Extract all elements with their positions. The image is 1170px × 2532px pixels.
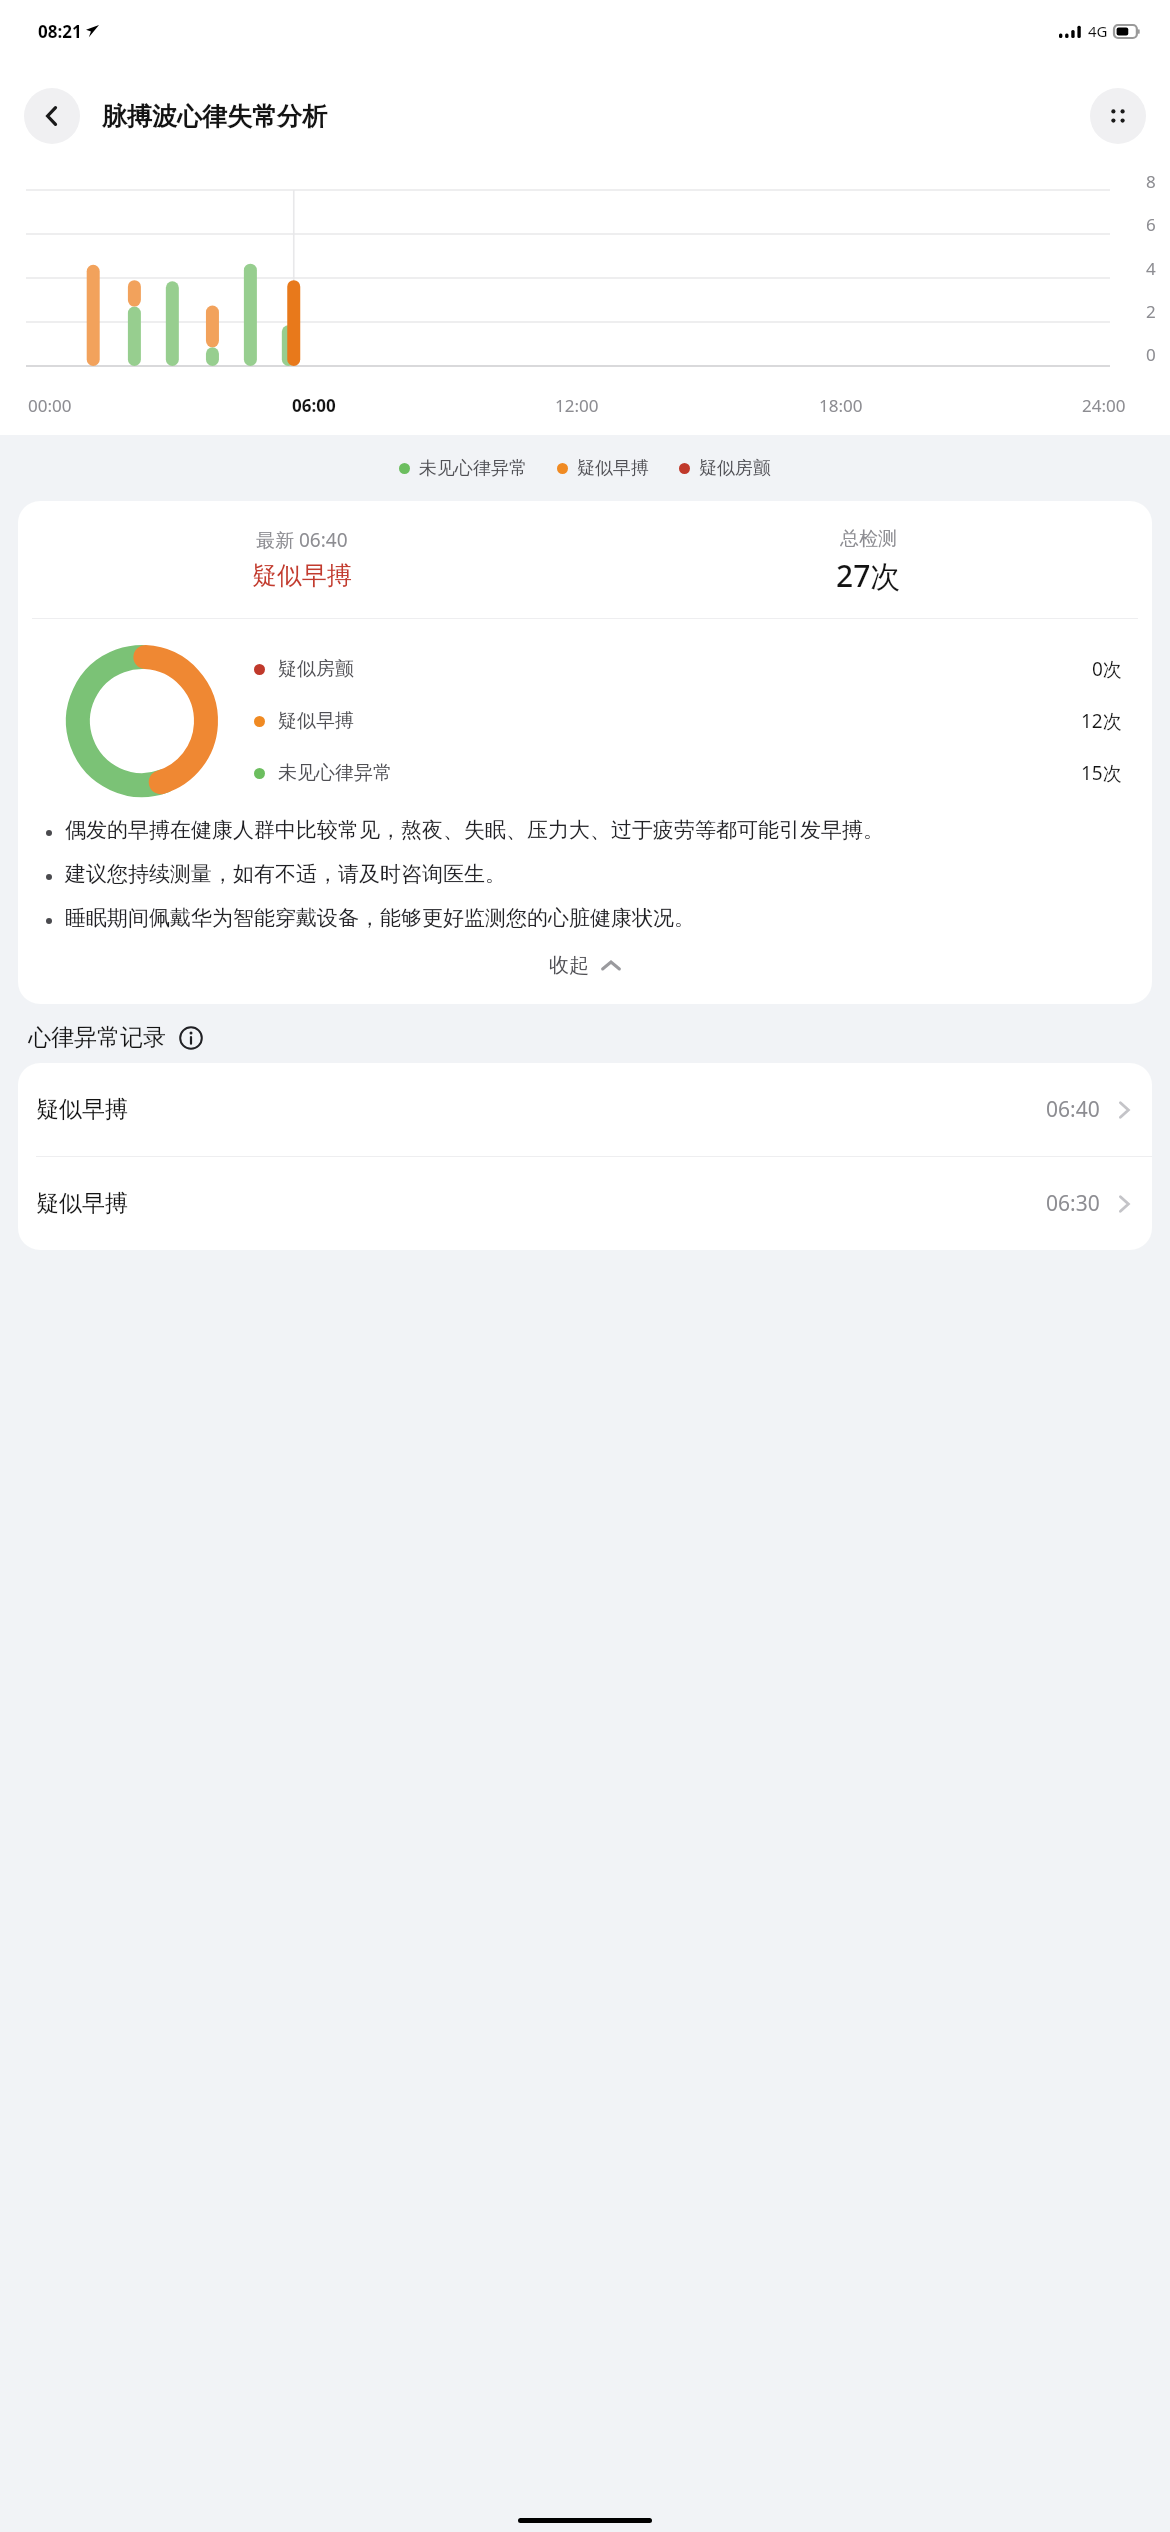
button[interactable]: 收起	[18, 953, 1152, 978]
staticText: 最新 06:40	[256, 527, 348, 553]
button[interactable]: 更多	[1090, 88, 1146, 144]
staticText: 0次	[1092, 656, 1122, 682]
staticText: 2	[1146, 300, 1156, 323]
staticText: 疑似房颤	[278, 657, 354, 681]
staticText: 00:00	[28, 394, 72, 417]
staticText: 疑似早搏	[577, 457, 649, 480]
staticText: 疑似早搏	[36, 1095, 128, 1124]
staticText: 4	[1146, 257, 1156, 280]
staticText: 心律异常记录	[28, 1023, 166, 1052]
button[interactable]: 疑似早搏	[18, 1063, 1152, 1156]
staticText: 建议您持续测量，如有不适，请及时咨询医生。	[65, 861, 506, 887]
staticText: 疑似早搏	[252, 560, 352, 591]
staticText: 06:00	[292, 394, 336, 417]
staticText: 疑似房颤	[699, 457, 771, 480]
button[interactable]: 说明	[178, 1025, 204, 1051]
staticText: 4G	[1088, 21, 1108, 41]
staticText: 睡眠期间佩戴华为智能穿戴设备，能够更好监测您的心脏健康状况。	[65, 905, 695, 931]
staticText: 未见心律异常	[419, 457, 527, 480]
staticText: 15次	[1081, 760, 1122, 786]
staticText: 6	[1146, 213, 1156, 236]
staticText: 疑似早搏	[278, 709, 354, 733]
staticText: 06:40	[1046, 1095, 1100, 1124]
staticText: 0	[1146, 343, 1156, 366]
staticText: 收起	[549, 953, 589, 978]
staticText: 8	[1146, 170, 1156, 193]
staticText: 24:00	[1082, 394, 1126, 417]
staticText: 未见心律异常	[278, 761, 392, 785]
staticText: 12:00	[555, 394, 599, 417]
staticText: 偶发的早搏在健康人群中比较常见，熬夜、失眠、压力大、过于疲劳等都可能引发早搏。	[65, 817, 884, 843]
staticText: 12次	[1081, 708, 1122, 734]
staticText: 总检测	[840, 527, 897, 551]
button[interactable]: 返回	[24, 88, 80, 144]
button[interactable]: 疑似早搏	[18, 1157, 1152, 1250]
staticText: 疑似早搏	[36, 1189, 128, 1218]
staticText: 08:21	[38, 20, 82, 43]
staticText: 06:30	[1046, 1189, 1100, 1218]
staticText: 脉搏波心律失常分析	[102, 101, 327, 132]
staticText: 18:00	[819, 394, 863, 417]
staticText: 27次	[836, 555, 901, 596]
